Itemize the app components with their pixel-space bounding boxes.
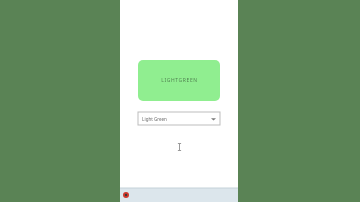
button[interactable]: App icon: [122, 191, 130, 199]
button[interactable]: Light Green: [138, 112, 220, 125]
staticText: Light Green: [142, 116, 167, 122]
button[interactable]: LIGHTGREEN: [138, 60, 220, 101]
other: Open dropdown: [211, 117, 216, 121]
other: Text cursor: [177, 143, 182, 151]
staticText: LIGHTGREEN: [161, 77, 198, 84]
